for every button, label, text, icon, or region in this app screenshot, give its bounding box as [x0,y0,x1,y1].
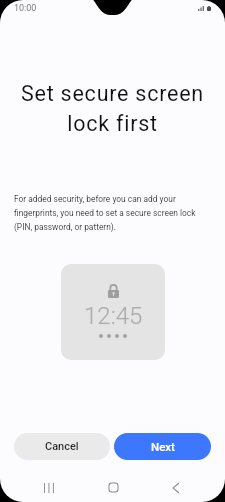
staticText: Set secure screen lock first [0,81,225,136]
button[interactable]: Next [114,433,211,460]
button[interactable]: Back [156,474,196,501]
staticText: Next [151,440,175,453]
staticText: 10:00 [14,3,37,14]
button[interactable]: Cancel [14,433,110,460]
button[interactable]: Home [93,474,133,501]
button[interactable]: Recent apps [29,474,69,501]
staticText: For added security, before you can add y… [14,194,213,232]
staticText: Cancel [45,440,79,453]
staticText: 12:45 [84,302,143,330]
